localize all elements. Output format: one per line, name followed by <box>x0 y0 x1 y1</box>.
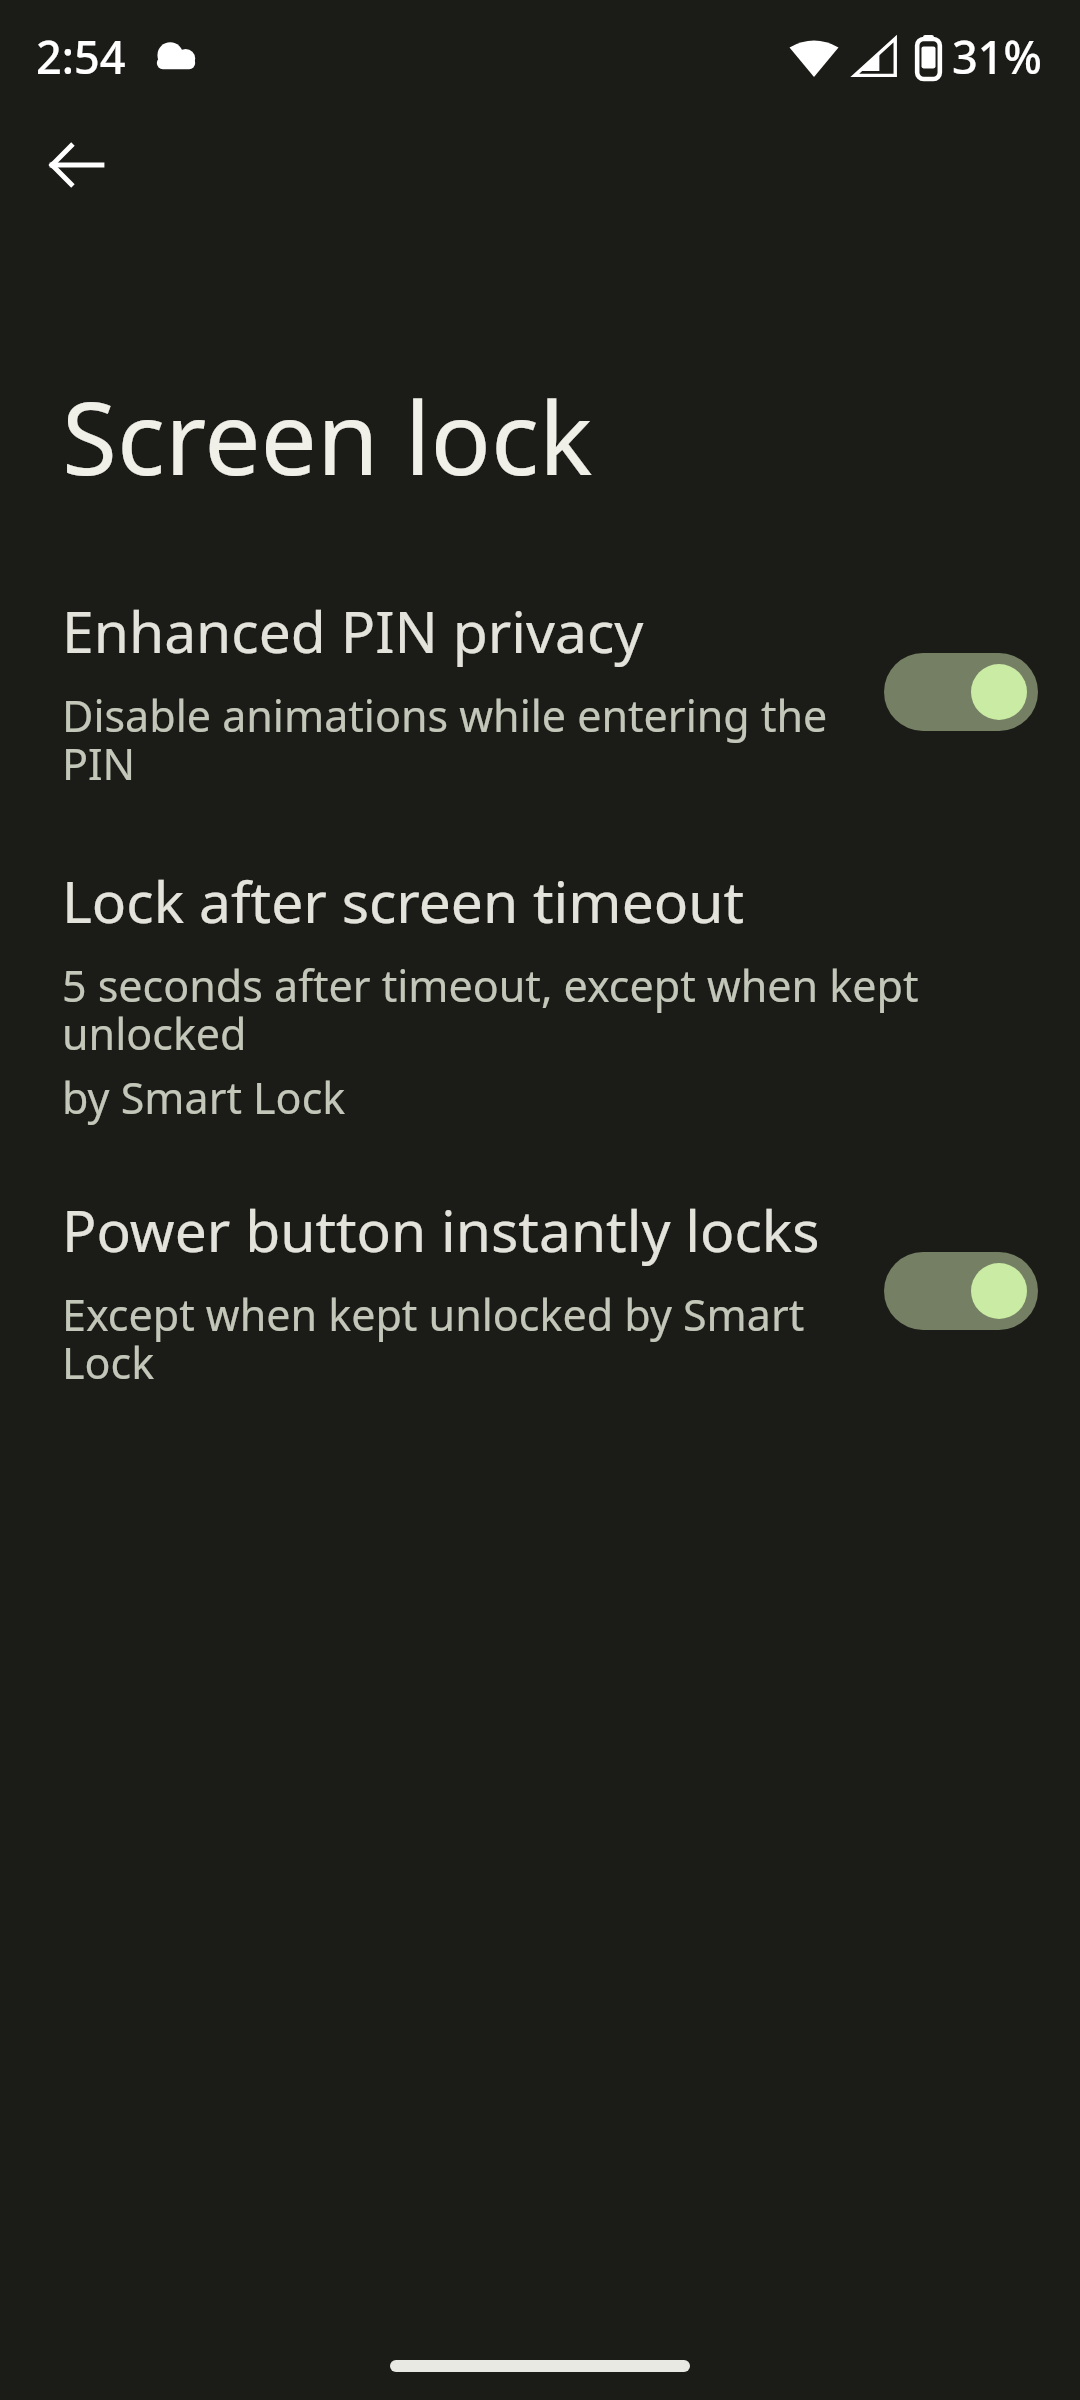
staticText: 31% <box>952 26 1042 87</box>
staticText: 2:54 <box>36 26 126 87</box>
button[interactable]: Power button instantly locks <box>0 1191 1080 1391</box>
staticText: Lock after screen timeout <box>62 862 745 940</box>
button[interactable]: Navigate up <box>24 112 130 218</box>
staticText: Disable animations while entering the PI… <box>62 686 868 792</box>
button[interactable]: Enhanced PIN privacy <box>0 592 1080 792</box>
button[interactable]: Lock after screen timeout <box>0 862 1080 1127</box>
button[interactable]: Toggle setting <box>884 653 1038 731</box>
staticText: Except when kept unlocked by Smart Lock <box>62 1285 868 1391</box>
staticText: 5 seconds after timeout, except when kep… <box>62 956 1038 1062</box>
staticText: Power button instantly locks <box>62 1191 820 1269</box>
staticText: Screen lock <box>62 368 593 504</box>
button[interactable]: Toggle setting <box>884 1252 1038 1330</box>
staticText: by Smart Lock <box>62 1068 346 1127</box>
staticText: Enhanced PIN privacy <box>62 592 644 670</box>
